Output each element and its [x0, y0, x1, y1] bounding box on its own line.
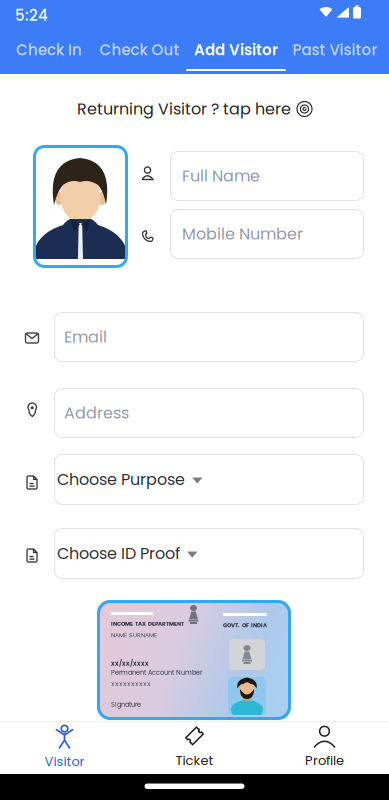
staticText: Profile: [305, 751, 344, 770]
button[interactable]: Choose Purpose: [54, 454, 364, 505]
button[interactable]: Add Visitor: [189, 32, 283, 68]
button[interactable]: Full Name: [170, 151, 364, 201]
staticText: Ticket: [175, 751, 213, 770]
button[interactable]: Profile: [260, 723, 389, 773]
staticText: Add Visitor: [194, 39, 278, 60]
staticText: Permanent Account Number: [111, 668, 202, 677]
staticText: NAME SURNAME: [111, 631, 157, 639]
button[interactable]: Check In: [2, 32, 96, 68]
staticText: INCOME TAX DEPARTMENT: [111, 620, 184, 628]
staticText: 5:24: [15, 5, 48, 26]
button[interactable]: Visitor photo: [33, 145, 128, 268]
staticText: Full Name: [182, 165, 260, 187]
staticText: Visitor: [44, 752, 84, 771]
staticText: Address: [64, 402, 129, 424]
button[interactable]: Returning Visitor ? tap here: [0, 95, 389, 123]
staticText: Past Visitor: [292, 39, 377, 60]
staticText: Returning Visitor ? tap here: [77, 98, 291, 120]
staticText: xx/xx/xxxx: [111, 659, 149, 668]
button[interactable]: Ticket: [130, 723, 259, 773]
staticText: Email: [64, 326, 107, 348]
staticText: Check In: [16, 39, 82, 60]
button[interactable]: Choose ID Proof: [54, 528, 364, 579]
staticText: Mobile Number: [182, 223, 303, 245]
staticText: XXXXXXXXXX: [111, 680, 151, 688]
button[interactable]: Check Out: [92, 32, 186, 68]
button[interactable]: Address: [54, 388, 364, 438]
button[interactable]: Past Visitor: [288, 32, 382, 68]
staticText: GOVT. OF INDIA: [223, 621, 267, 629]
button[interactable]: Email: [54, 312, 364, 362]
button[interactable]: Visitor: [0, 723, 129, 773]
staticText: Choose ID Proof: [57, 542, 180, 565]
staticText: Signature: [111, 700, 141, 709]
staticText: Check Out: [99, 39, 179, 60]
staticText: Choose Purpose: [57, 468, 185, 491]
button[interactable]: Mobile Number: [170, 209, 364, 259]
button[interactable]: ID proof preview: [97, 600, 291, 720]
